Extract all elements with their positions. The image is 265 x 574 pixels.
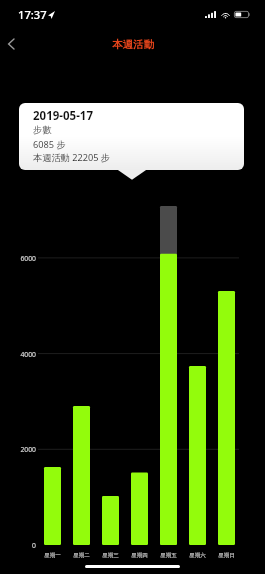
button[interactable]: Back [0, 30, 26, 58]
staticText: 本週活動 22205 步 [33, 151, 110, 164]
staticText: 2019-05-17 [33, 108, 93, 124]
staticText: 星期三 [96, 552, 125, 559]
staticText: 2000 [0, 445, 36, 454]
staticText: 0 [0, 541, 36, 550]
staticText: 星期五 [154, 552, 183, 559]
button[interactable]: 2019-05-17 [19, 103, 244, 170]
staticText: 星期四 [125, 552, 154, 559]
staticText: 星期日 [212, 552, 241, 559]
staticText: 4000 [0, 350, 36, 359]
staticText: 6000 [0, 254, 36, 263]
staticText: 星期六 [183, 552, 212, 559]
staticText: 本週活動 [112, 38, 154, 51]
staticText: 星期二 [67, 552, 96, 559]
staticText: 17:37 [18, 7, 47, 22]
staticText: 6085 步 [33, 138, 66, 151]
staticText: 步數 [33, 124, 52, 136]
staticText: 星期一 [38, 552, 67, 559]
